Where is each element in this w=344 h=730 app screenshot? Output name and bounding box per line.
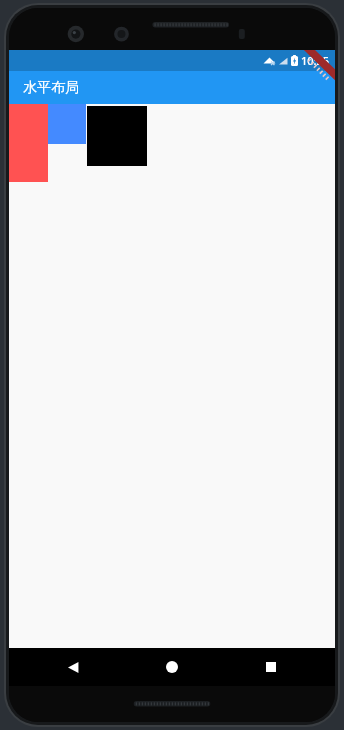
staticText: 水平布局 <box>23 79 79 97</box>
button[interactable]: Home <box>154 649 190 685</box>
button[interactable]: Back <box>55 649 91 685</box>
button[interactable]: Recent apps <box>253 649 289 685</box>
staticText: 10:25 <box>301 53 330 68</box>
